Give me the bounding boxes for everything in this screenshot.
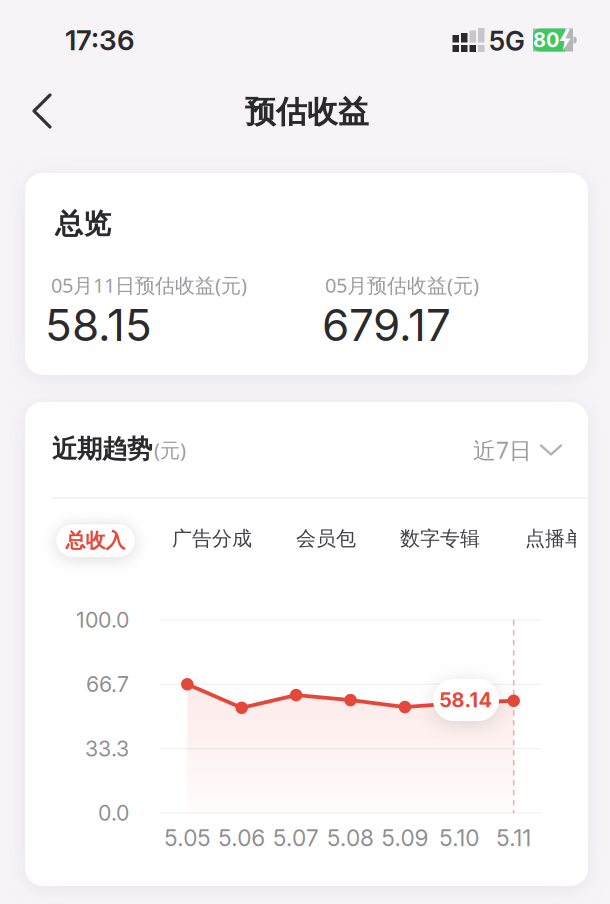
button[interactable]: 点播单曲 (525, 524, 576, 552)
staticText: 点播单曲 (525, 526, 605, 551)
staticText: 05月11日预估收益(元) (51, 272, 247, 298)
button[interactable]: 广告分成 (172, 526, 252, 551)
button[interactable] (31, 92, 52, 130)
staticText: 数字专辑 (400, 526, 480, 551)
staticText: 66.7 (86, 671, 129, 697)
staticText: 58.14 (439, 688, 492, 712)
staticText: 总览 (55, 207, 111, 241)
button[interactable]: 近7日 (473, 435, 563, 465)
staticText: 5G (489, 25, 525, 57)
staticText: 近7日 (473, 435, 532, 465)
staticText: (元) (154, 436, 186, 463)
button[interactable]: 数字专辑 (400, 526, 480, 551)
button[interactable]: 会员包 (296, 526, 356, 551)
staticText: 5.06 (218, 824, 265, 852)
staticText: 总收入 (65, 528, 125, 553)
staticText: 5.10 (439, 824, 479, 852)
staticText: 广告分成 (172, 526, 252, 551)
staticText: 0.0 (98, 800, 129, 826)
staticText: 5.11 (496, 824, 531, 852)
staticText: 5.08 (327, 824, 374, 852)
staticText: 预估收益 (245, 93, 369, 131)
staticText: 33.3 (85, 736, 129, 762)
staticText: 近期趋势 (52, 433, 152, 464)
staticText: 会员包 (296, 526, 356, 551)
staticText: 58.15 (45, 298, 152, 352)
staticText: 5.07 (273, 824, 319, 852)
staticText: 80 (533, 28, 559, 52)
staticText: 5.09 (381, 824, 428, 852)
button[interactable]: 总收入 (55, 523, 136, 558)
staticText: 17:36 (65, 23, 135, 57)
staticText: 5.05 (164, 824, 210, 852)
staticText: 100.0 (76, 607, 129, 633)
staticText: 05月预估收益(元) (325, 272, 479, 298)
staticText: 679.17 (322, 298, 451, 352)
